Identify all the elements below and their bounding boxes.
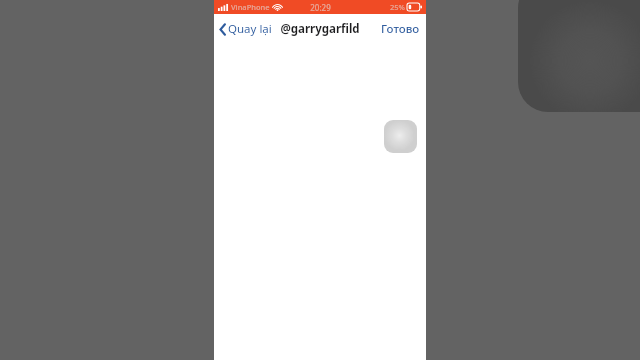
- staticText: 25%: [390, 2, 405, 12]
- staticText: Готово: [381, 21, 420, 37]
- staticText: Quay lại: [228, 21, 272, 37]
- staticText: VinaPhone: [231, 2, 270, 12]
- button[interactable]: Quay lại: [214, 14, 276, 44]
- staticText: 20:29: [310, 2, 331, 13]
- staticText: @garrygarfild: [280, 21, 360, 37]
- button[interactable]: Готово: [375, 14, 426, 44]
